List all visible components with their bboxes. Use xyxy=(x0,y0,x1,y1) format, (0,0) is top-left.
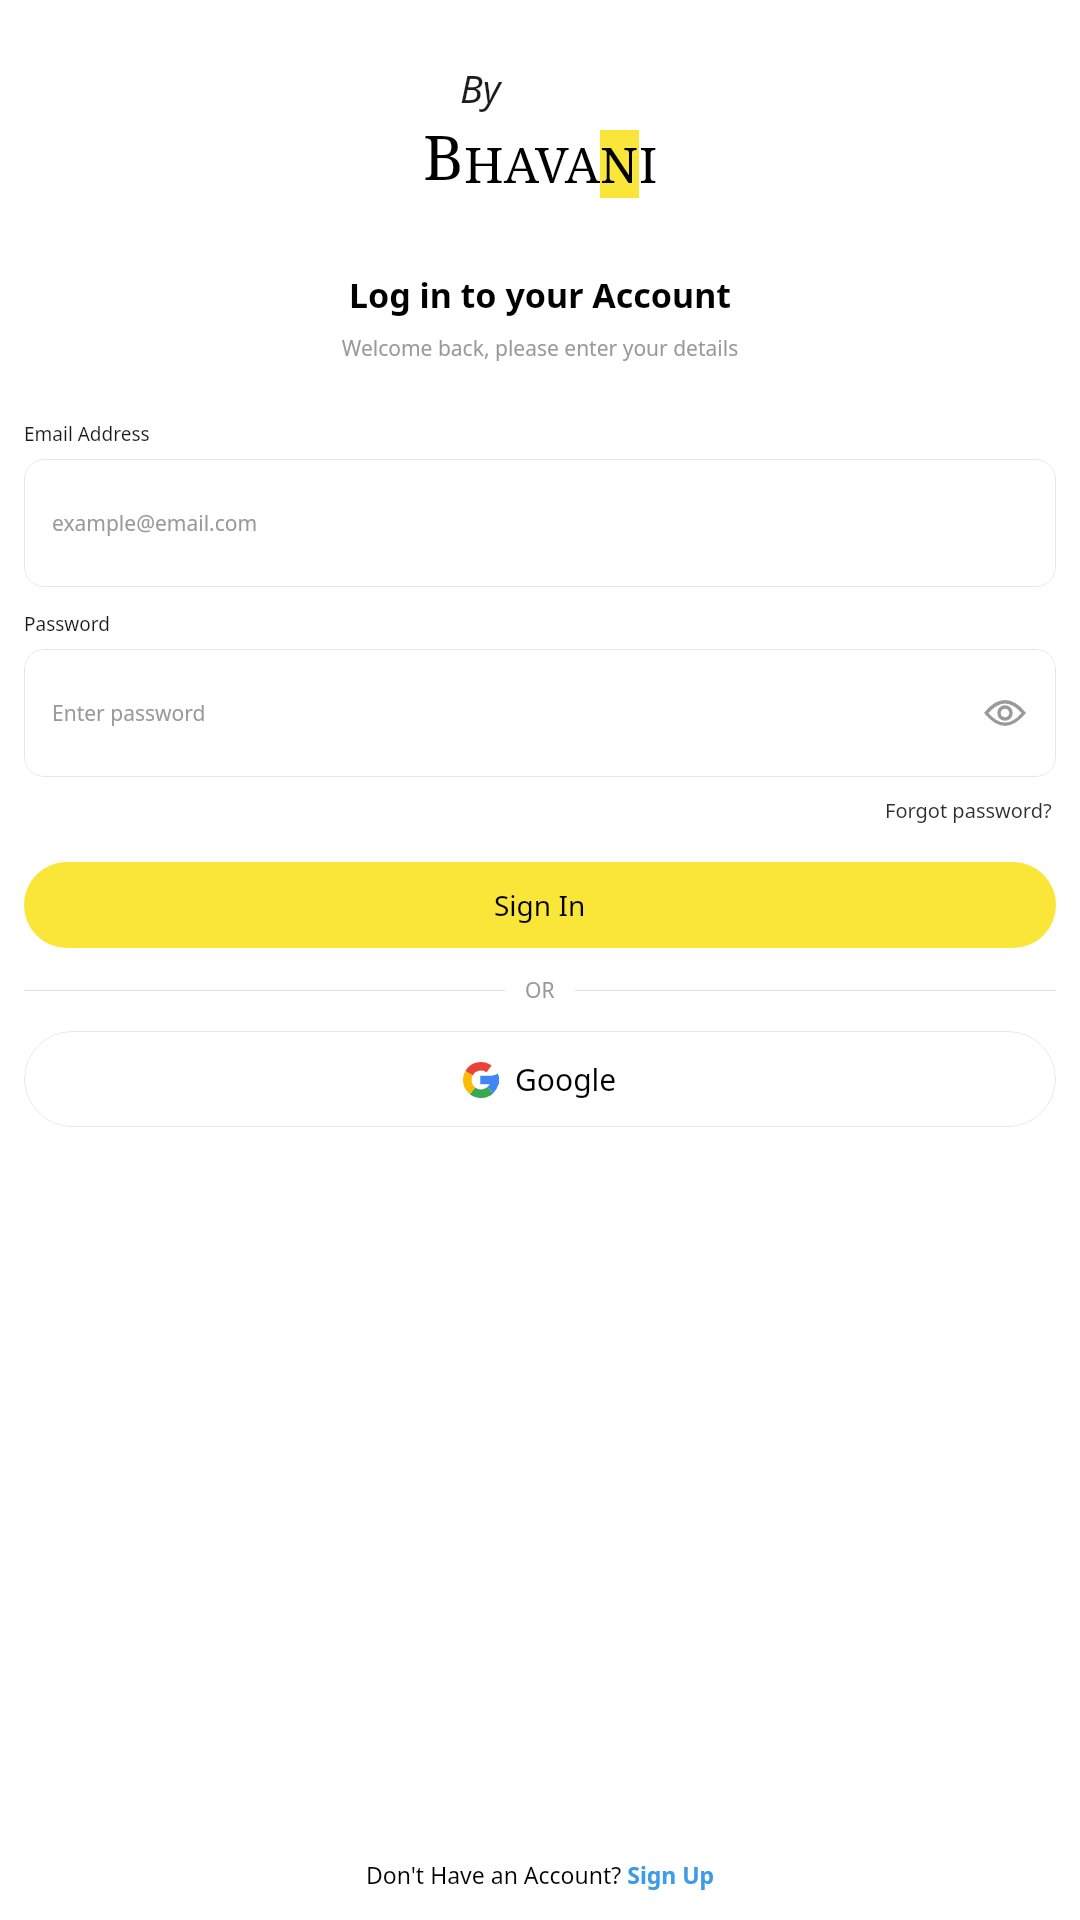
button[interactable]: Email address field xyxy=(24,459,1056,587)
button[interactable]: Forgot password? xyxy=(881,791,1056,830)
staticText: Sign In xyxy=(494,886,586,924)
button[interactable]: Don't Have an Account? Sign Up xyxy=(358,1851,723,1898)
staticText: Don't Have an Account? Sign Up xyxy=(366,1859,715,1890)
button[interactable]: Google xyxy=(24,1031,1056,1127)
staticText: example@email.com xyxy=(52,509,258,538)
staticText: By xyxy=(460,62,501,114)
button[interactable]: Password field xyxy=(24,649,1056,777)
staticText: Log in to your Account xyxy=(24,272,1056,318)
button[interactable]: Sign In xyxy=(24,862,1056,948)
staticText: Forgot password? xyxy=(885,797,1052,824)
staticText: Google xyxy=(515,1059,617,1100)
staticText: Email Address xyxy=(24,421,1056,447)
button[interactable]: Show password xyxy=(982,690,1028,736)
staticText: Enter password xyxy=(52,699,982,728)
staticText: N xyxy=(600,130,639,198)
staticText: OR xyxy=(525,976,555,1005)
staticText: Password xyxy=(24,611,1056,637)
staticText: Welcome back, please enter your details xyxy=(24,334,1056,363)
staticText: HAVA xyxy=(464,130,600,198)
staticText: I xyxy=(639,130,658,198)
staticText: B xyxy=(423,114,464,198)
